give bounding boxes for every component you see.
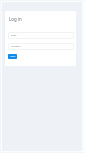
button[interactable]: Login [8, 54, 17, 59]
button[interactable]: Email [8, 32, 74, 39]
staticText: Log in [9, 16, 22, 22]
staticText: Login [10, 55, 16, 58]
staticText: Email [11, 34, 17, 37]
button[interactable]: Password [8, 43, 74, 50]
staticText: Password [11, 45, 21, 48]
